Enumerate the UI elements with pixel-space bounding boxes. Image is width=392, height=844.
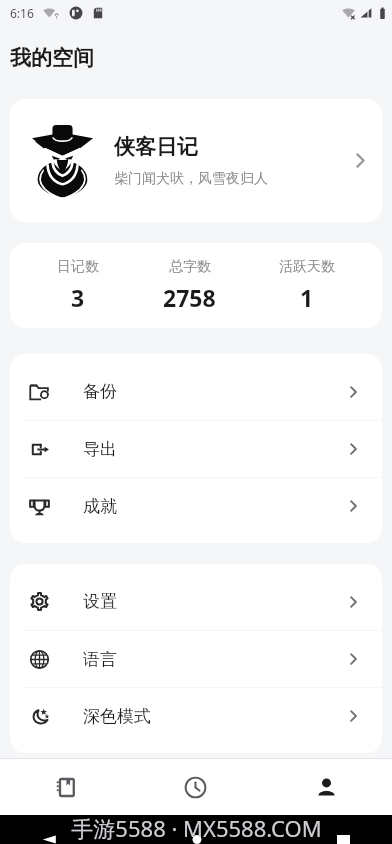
staticText: 设置 — [83, 591, 117, 612]
button[interactable]: Diary — [0, 759, 130, 815]
staticText: 侠客日记 — [114, 134, 198, 160]
button[interactable]: 语言 — [10, 631, 382, 687]
staticText: 活跃天数 — [279, 258, 335, 276]
staticText: 2758 — [163, 282, 216, 313]
staticText: 柴门闻犬吠，风雪夜归人 — [114, 170, 268, 188]
staticText: 语言 — [83, 649, 117, 670]
staticText: 日记数 — [57, 258, 99, 276]
staticText: 1 — [300, 282, 314, 313]
button[interactable]: 备份 — [10, 363, 382, 420]
button[interactable]: 设置 — [10, 573, 382, 630]
button[interactable]: 导出 — [10, 421, 382, 477]
other: Back — [42, 835, 57, 844]
staticText: 手游5588 · MX5588.COM — [71, 813, 322, 842]
staticText: 深色模式 — [83, 706, 151, 727]
other: Home — [190, 835, 204, 844]
staticText: 导出 — [83, 439, 117, 460]
staticText: 备份 — [83, 381, 117, 402]
button[interactable]: 深色模式 — [10, 688, 382, 744]
button[interactable]: 侠客日记 — [10, 99, 382, 222]
button[interactable]: Profile — [261, 759, 392, 815]
staticText: 3 — [71, 282, 85, 313]
button[interactable]: 成就 — [10, 478, 382, 534]
button[interactable]: History — [130, 759, 261, 815]
staticText: 成就 — [83, 496, 117, 517]
staticText: 6:16 — [10, 5, 34, 21]
staticText: 总字数 — [169, 258, 211, 276]
staticText: 我的空间 — [10, 45, 94, 71]
